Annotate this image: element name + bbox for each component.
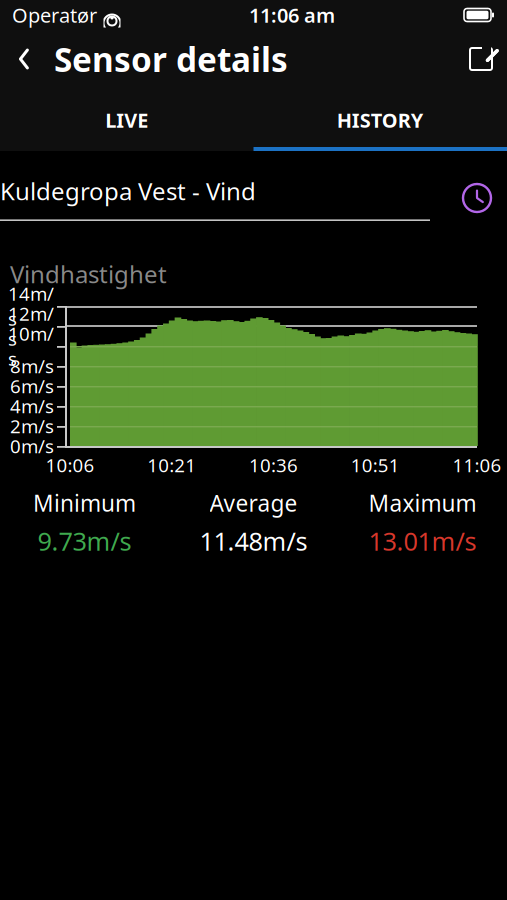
staticText: 11:06 am [249,2,335,28]
staticText: Kuldegropa Vest - Vind [0,175,256,207]
button[interactable]: HISTORY [253,93,507,151]
staticText: 14m/s [8,281,54,331]
button[interactable]: Back [0,33,48,85]
staticText: Average [209,488,297,518]
staticText: 11.48m/s [199,524,307,558]
staticText: Vindhastighet [10,258,167,290]
staticText: 10:36 [249,453,298,477]
staticText: LIVE [105,107,148,133]
staticText: 2m/s [10,414,54,438]
staticText: 11:06 [452,453,501,477]
staticText: 0m/s [10,434,54,458]
button[interactable]: Edit [455,33,507,85]
staticText: HISTORY [337,107,424,133]
staticText: 4m/s [10,394,54,418]
staticText: 10:06 [45,453,94,477]
staticText: 8m/s [10,354,54,378]
staticText: 10:51 [351,453,400,477]
staticText: 9.73m/s [37,524,131,558]
staticText: 12m/s [8,301,54,351]
button[interactable]: LIVE [0,93,253,151]
staticText: 13.01m/s [368,524,476,558]
staticText: Sensor details [54,37,288,81]
staticText: 10:21 [147,453,196,477]
staticText: 6m/s [10,374,54,398]
staticText: Minimum [33,488,136,518]
staticText: 10m/s [8,321,54,371]
button[interactable]: Select sensor and time range [0,166,507,230]
staticText: Maximum [368,488,476,518]
staticText: Operatør [12,2,97,28]
